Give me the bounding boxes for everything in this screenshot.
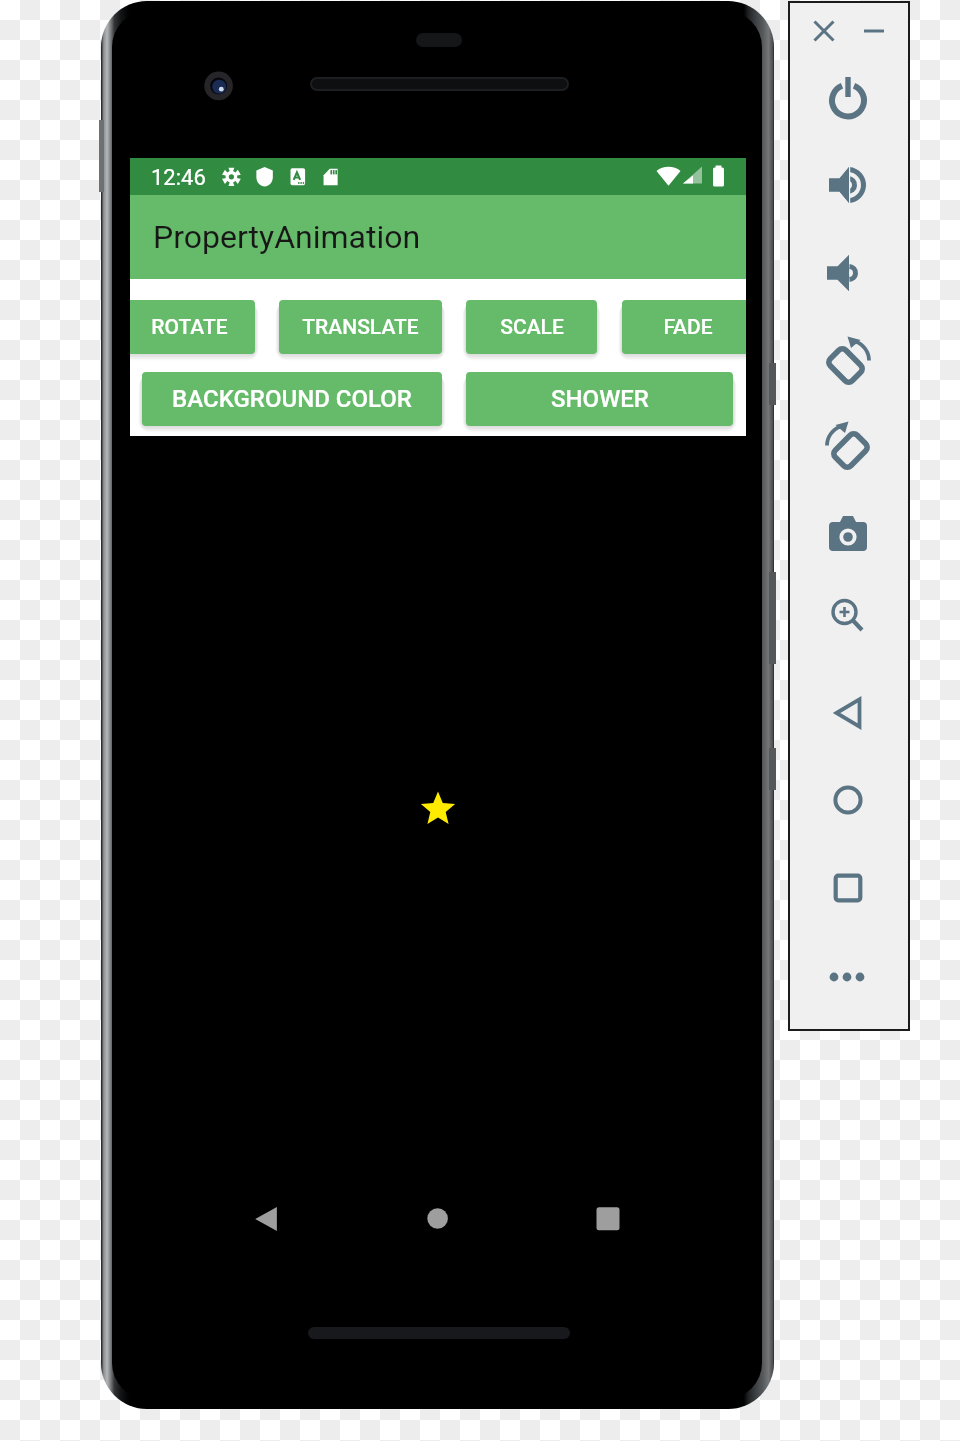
button[interactable]: ROTATE	[130, 300, 255, 354]
staticText: FADE	[663, 315, 713, 340]
button[interactable]: Overview	[824, 864, 872, 912]
button[interactable]: BACKGROUND COLOR	[142, 372, 442, 426]
button[interactable]: Rotate right	[824, 422, 872, 470]
button[interactable]: SHOWER	[466, 372, 733, 426]
button[interactable]: FADE	[622, 300, 746, 354]
button[interactable]: TRANSLATE	[279, 300, 442, 354]
staticText: 12:46	[151, 165, 206, 191]
button[interactable]: More options	[823, 953, 871, 1001]
button[interactable]: Back	[824, 689, 872, 737]
button[interactable]: Screenshot	[824, 509, 872, 557]
button[interactable]: Volume down	[824, 249, 872, 297]
button[interactable]: Power	[824, 74, 872, 122]
button[interactable]: SCALE	[466, 300, 597, 354]
staticText: PropertyAnimation	[153, 218, 421, 256]
button[interactable]: Minimize	[850, 7, 898, 55]
button[interactable]: Home	[824, 776, 872, 824]
staticText: BACKGROUND COLOR	[172, 385, 412, 413]
button[interactable]: Zoom	[824, 592, 872, 640]
button[interactable]: Rotate left	[824, 337, 872, 385]
button[interactable]: Volume up	[824, 161, 872, 209]
staticText: ROTATE	[151, 315, 228, 340]
staticText: TRANSLATE	[302, 315, 419, 340]
staticText: SCALE	[500, 315, 564, 340]
staticText: SHOWER	[551, 385, 649, 413]
button[interactable]: Close	[800, 7, 848, 55]
